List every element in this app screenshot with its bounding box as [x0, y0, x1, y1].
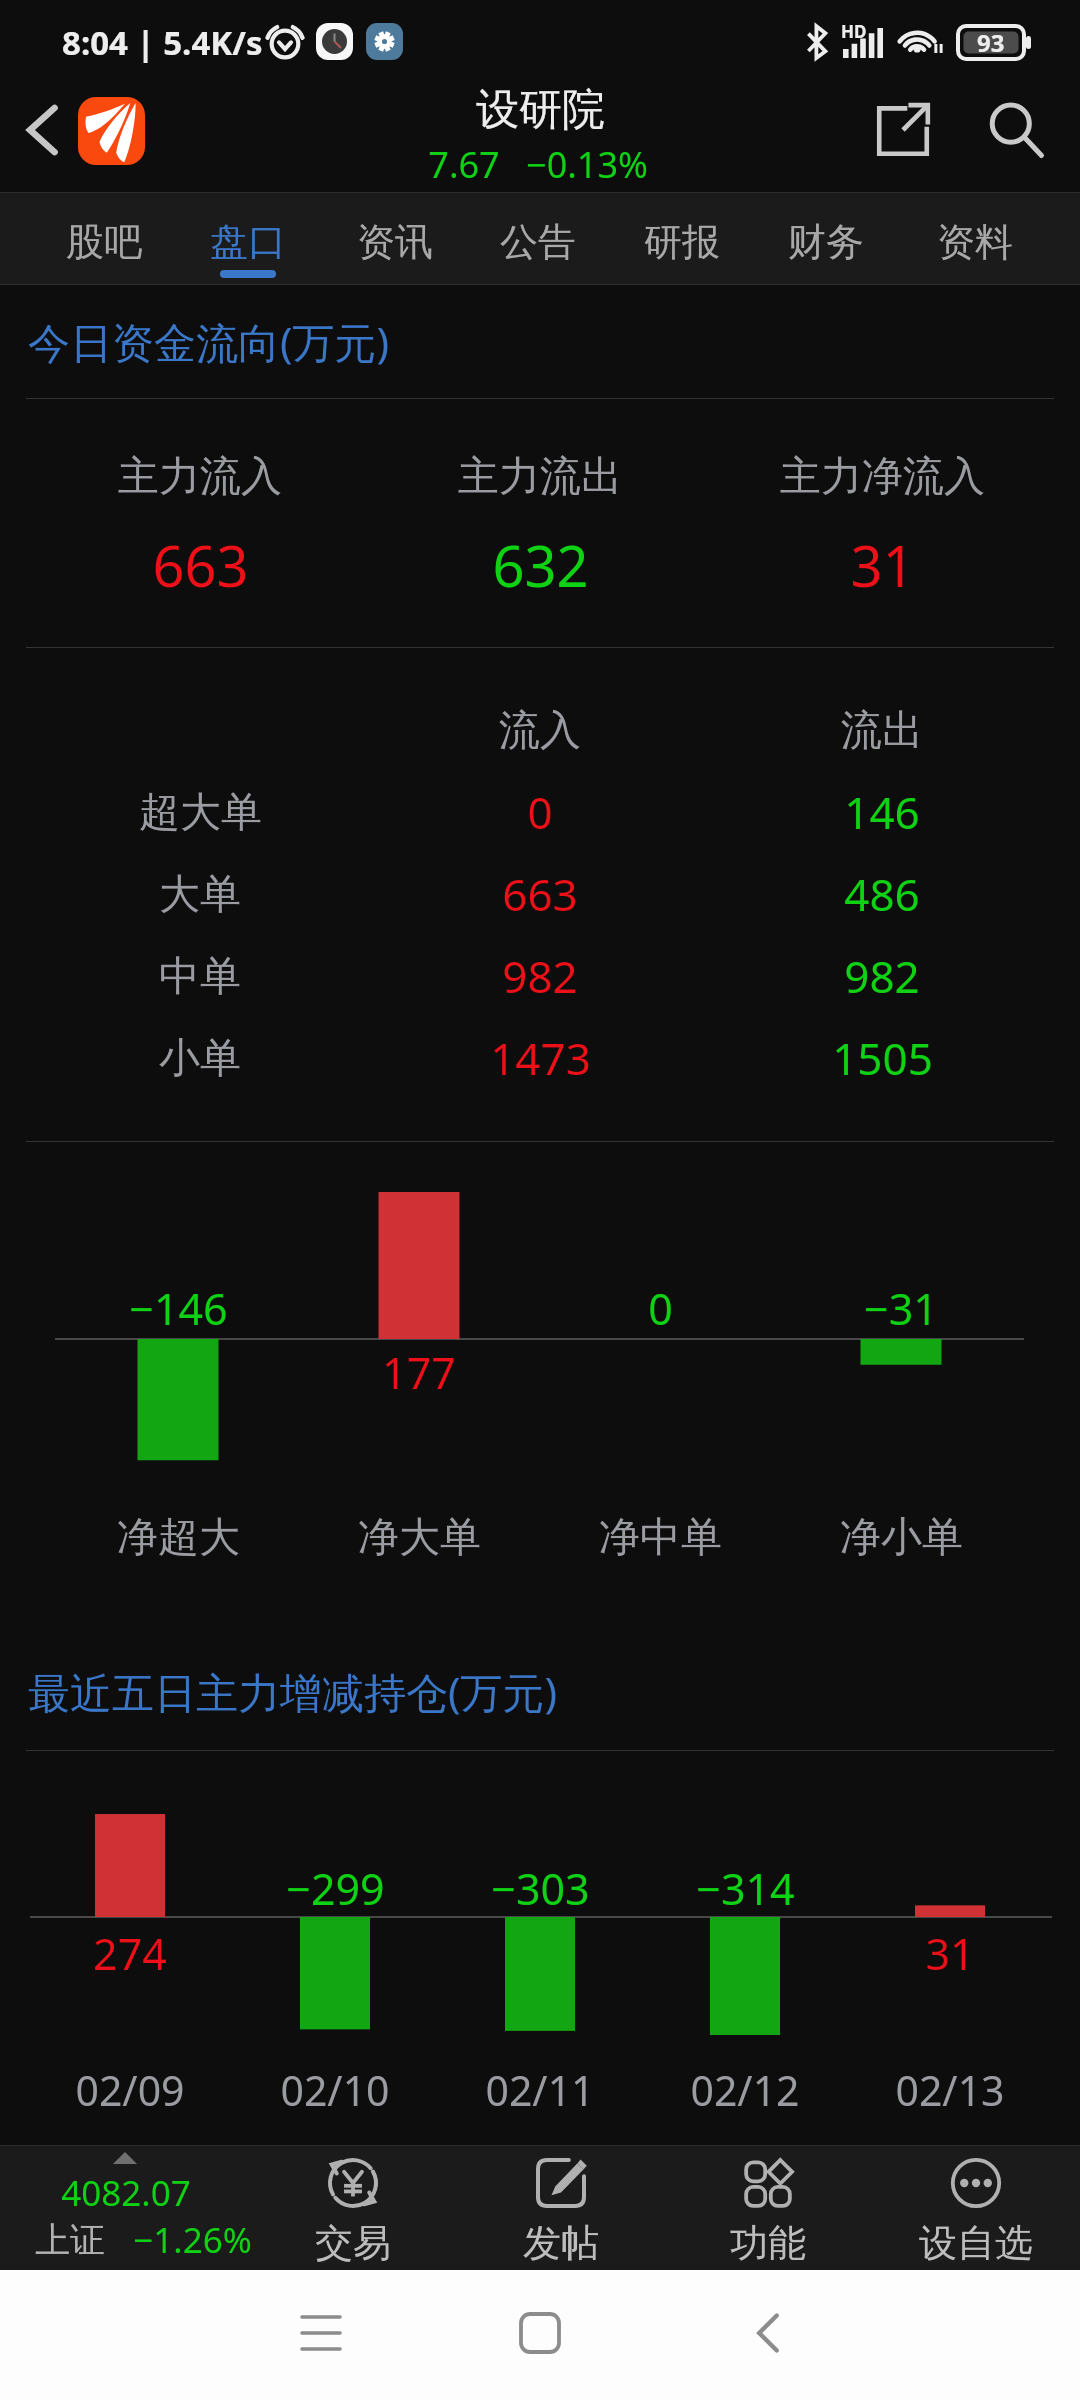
staticText: 财务	[788, 218, 864, 266]
button[interactable]: 公告	[478, 192, 598, 285]
staticText: 31	[850, 527, 915, 603]
button[interactable]: 交易	[249, 2146, 457, 2270]
staticText: 93	[977, 26, 1005, 59]
staticText: HD	[841, 20, 867, 43]
staticText: 公告	[500, 218, 576, 266]
staticText: 净中单	[599, 1512, 722, 1564]
button[interactable]: 股吧	[44, 192, 164, 285]
staticText: 632	[492, 527, 589, 603]
staticText: 大单	[159, 869, 241, 921]
staticText: 盘口	[210, 218, 286, 266]
staticText: −314	[696, 1859, 795, 1918]
staticText: 177	[382, 1343, 456, 1402]
staticText: 资讯	[357, 218, 433, 266]
staticText: 功能	[730, 2219, 806, 2267]
staticText: 流入	[499, 705, 581, 757]
staticText: 交易	[315, 2219, 391, 2267]
button[interactable]: 研报	[622, 192, 742, 285]
staticText: 4082.07	[61, 2169, 191, 2217]
staticText: 流出	[841, 705, 923, 757]
staticText: 资料	[937, 218, 1013, 266]
button[interactable]: Back	[718, 2283, 818, 2383]
button[interactable]: Home	[490, 2283, 590, 2383]
staticText: 663	[152, 527, 249, 603]
staticText: 02/10	[280, 2062, 390, 2118]
staticText: 小单	[159, 1033, 241, 1085]
staticText: 982	[844, 946, 920, 1006]
staticText: 今日资金流向(万元)	[28, 313, 390, 370]
staticText: 净大单	[358, 1512, 481, 1564]
staticText: 设研院	[476, 83, 605, 137]
staticText: 0	[648, 1279, 673, 1338]
staticText: 股吧	[66, 218, 142, 266]
staticText: 最近五日主力增减持仓(万元)	[28, 1663, 558, 1720]
staticText: 上证	[35, 2218, 105, 2262]
staticText: 0	[527, 782, 553, 842]
button[interactable]: Recent apps	[271, 2283, 371, 2383]
staticText: −146	[129, 1279, 228, 1338]
staticText: 274	[93, 1924, 167, 1983]
button[interactable]: 资料	[915, 192, 1035, 285]
staticText: 02/09	[75, 2062, 185, 2118]
button[interactable]: Search	[968, 82, 1064, 178]
staticText: 中单	[159, 951, 241, 1003]
staticText: 超大单	[139, 787, 262, 839]
staticText: 1505	[832, 1028, 933, 1088]
button[interactable]: 上证 4082.07 −1.26%	[0, 2146, 249, 2270]
staticText: −303	[491, 1859, 590, 1918]
button[interactable]: 资讯	[335, 192, 455, 285]
staticText: 02/12	[690, 2062, 800, 2118]
staticText: 31	[925, 1924, 975, 1983]
button[interactable]: App icon	[78, 97, 145, 165]
staticText: 设自选	[919, 2219, 1033, 2267]
staticText: 02/11	[485, 2062, 595, 2118]
staticText: −31	[864, 1279, 938, 1338]
staticText: 主力流出	[458, 451, 622, 503]
staticText: 7.67	[428, 140, 500, 189]
button[interactable]: 财务	[766, 192, 886, 285]
staticText: 发帖	[523, 2219, 599, 2267]
staticText: 02/13	[895, 2062, 1005, 2118]
staticText: 研报	[644, 218, 720, 266]
staticText: 663	[502, 864, 578, 924]
staticText: 982	[502, 946, 578, 1006]
button[interactable]: 设自选	[872, 2146, 1080, 2270]
staticText: −0.13%	[526, 140, 648, 189]
staticText: 主力净流入	[780, 451, 985, 503]
staticText: 净小单	[840, 1512, 963, 1564]
staticText: −1.26%	[133, 2216, 252, 2264]
staticText: 8:04 | 5.4K/s	[62, 20, 263, 65]
staticText: −299	[286, 1859, 385, 1918]
button[interactable]: 功能	[664, 2146, 872, 2270]
staticText: 486	[844, 864, 920, 924]
button[interactable]: Share	[855, 82, 951, 178]
button[interactable]: 盘口	[188, 192, 308, 285]
button[interactable]: 发帖	[457, 2146, 665, 2270]
staticText: 净超大	[117, 1512, 240, 1564]
staticText: 1473	[490, 1028, 591, 1088]
staticText: 146	[844, 782, 920, 842]
button[interactable]: Back	[6, 94, 78, 166]
staticText: 主力流入	[118, 451, 282, 503]
